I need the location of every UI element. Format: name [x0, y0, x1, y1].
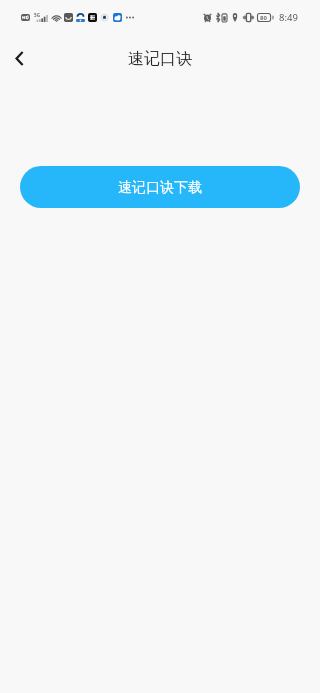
- staticText: 5G: [34, 12, 40, 18]
- staticText: 80: [260, 14, 267, 22]
- button[interactable]: Back: [0, 35, 44, 79]
- staticText: 速记口诀: [128, 49, 192, 69]
- button[interactable]: 速记口诀下载: [20, 166, 300, 208]
- staticText: 8:49: [279, 11, 298, 24]
- staticText: 速记口诀下载: [118, 179, 202, 197]
